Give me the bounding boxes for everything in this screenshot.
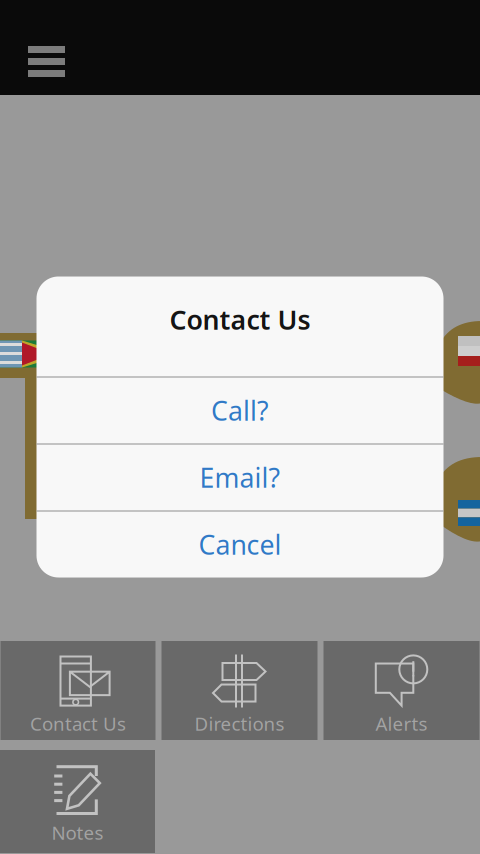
staticText: Directions bbox=[194, 711, 284, 736]
button[interactable]: Alerts bbox=[323, 641, 479, 740]
button[interactable]: Cancel bbox=[36, 511, 443, 577]
staticText: Cancel bbox=[198, 527, 281, 562]
button[interactable]: Notes bbox=[0, 750, 155, 853]
button[interactable]: Contact Us bbox=[0, 641, 155, 740]
staticText: Contact Us bbox=[30, 711, 126, 736]
button[interactable]: Directions bbox=[161, 641, 317, 740]
staticText: Email? bbox=[199, 460, 280, 495]
staticText: Alerts bbox=[375, 711, 427, 736]
staticText: Contact Us bbox=[169, 302, 310, 337]
button[interactable]: Menu bbox=[0, 0, 89, 96]
staticText: Call? bbox=[211, 393, 269, 428]
button[interactable]: Call? bbox=[36, 377, 443, 443]
staticText: Notes bbox=[51, 820, 103, 845]
button[interactable]: Email? bbox=[36, 444, 443, 510]
